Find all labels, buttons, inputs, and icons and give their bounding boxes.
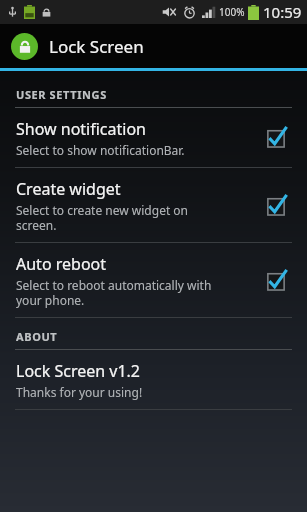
staticText: USER SETTINGS [16,87,107,102]
button[interactable]: Auto reboot [0,243,307,318]
staticText: 10:59 [263,2,302,22]
staticText: Thanks for your using! [16,384,143,400]
button[interactable]: Auto reboot checkbox [259,264,293,298]
staticText: Lock Screen [49,35,144,58]
staticText: Show notification [16,118,147,140]
staticText: ABOUT [16,329,58,344]
button[interactable]: Lock Screen v1.2 [0,350,307,410]
button[interactable]: Create widget checkbox [259,189,293,223]
staticText: 100% [219,5,245,19]
staticText: Auto reboot [16,253,107,275]
staticText: Lock Screen v1.2 [16,360,141,382]
staticText: Select to show notificationBar. [16,142,185,158]
button[interactable]: Show notification checkbox [259,121,293,155]
staticText: Select to create new widget on screen. [16,202,189,233]
button[interactable]: Create widget [0,168,307,243]
staticText: Select to reboot automatically with your… [16,277,212,308]
button[interactable]: Show notification [0,108,307,168]
staticText: Create widget [16,178,121,200]
